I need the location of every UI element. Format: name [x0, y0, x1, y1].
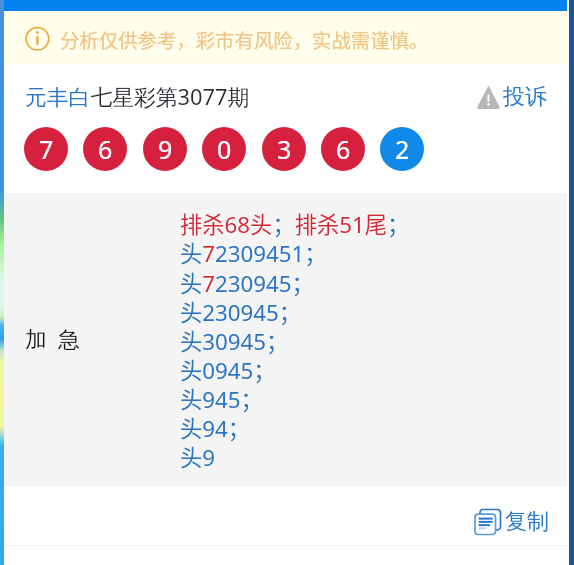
- staticText: 2: [395, 132, 410, 166]
- staticText: 加 急: [25, 324, 80, 354]
- staticText: 6: [98, 132, 113, 166]
- staticText: 头945；: [180, 382, 263, 414]
- staticText: 分析仅供参考，彩市有风险，实战需谨慎。: [60, 25, 429, 53]
- staticText: 头7230945；: [180, 266, 314, 298]
- button[interactable]: 7: [24, 127, 68, 171]
- staticText: 0: [217, 132, 232, 166]
- staticText: 头30945；: [180, 324, 289, 356]
- staticText: 头94；: [180, 411, 251, 443]
- staticText: 投诉: [503, 83, 547, 111]
- button[interactable]: 投诉: [476, 83, 547, 111]
- button[interactable]: 6: [321, 127, 365, 171]
- other: 投诉: [476, 85, 501, 109]
- staticText: 复制: [505, 508, 549, 536]
- staticText: 6: [336, 132, 351, 166]
- button[interactable]: 6: [83, 127, 127, 171]
- other: 复制: [475, 509, 501, 535]
- button[interactable]: 2: [380, 127, 424, 171]
- button[interactable]: 3: [262, 127, 306, 171]
- staticText: 头72309451；: [180, 236, 327, 268]
- staticText: 排杀68头；排杀51尾；: [180, 207, 410, 239]
- staticText: 头0945；: [180, 353, 276, 385]
- staticText: 3: [277, 132, 292, 166]
- staticText: 9: [158, 132, 173, 166]
- button[interactable]: 复制: [475, 508, 549, 536]
- staticText: 元丰白七星彩第3077期: [25, 82, 250, 112]
- staticText: 头230945；: [180, 295, 302, 327]
- staticText: 7: [39, 132, 54, 166]
- staticText: 头9: [180, 440, 216, 472]
- button[interactable]: 0: [202, 127, 246, 171]
- button[interactable]: 9: [143, 127, 187, 171]
